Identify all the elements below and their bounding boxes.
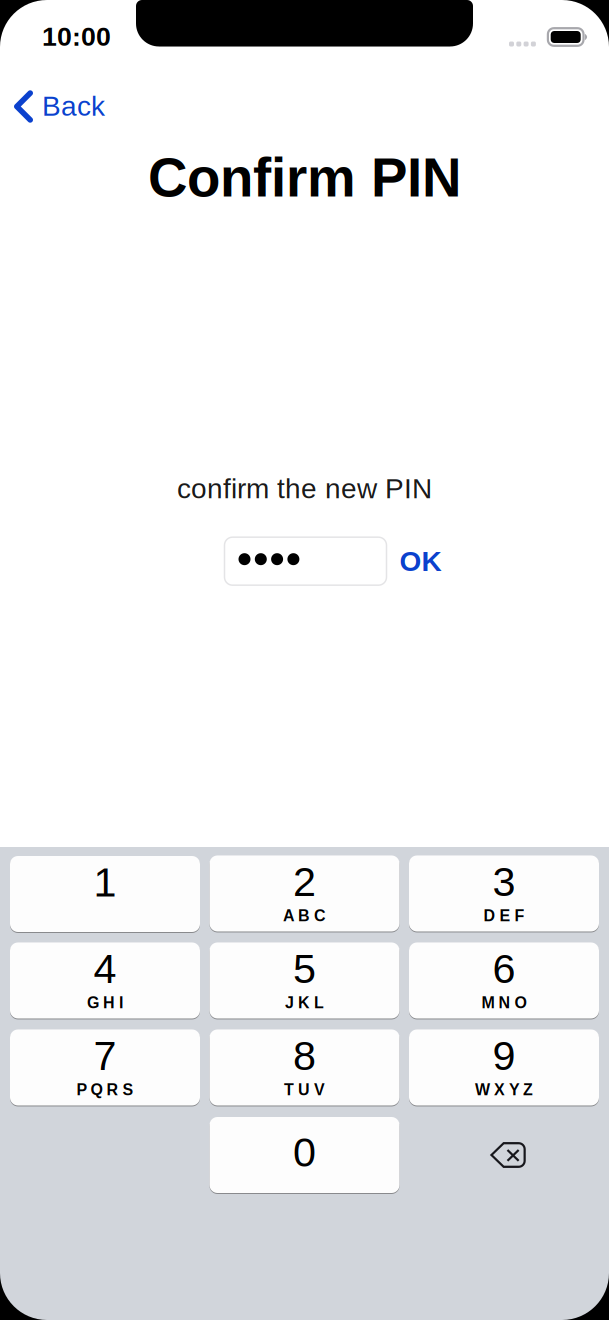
staticText: J K L xyxy=(285,994,324,1012)
staticText: Confirm PIN xyxy=(148,147,461,208)
staticText: 8 xyxy=(293,1032,316,1079)
button[interactable]: 1 xyxy=(10,856,200,932)
button[interactable]: 2 xyxy=(209,856,399,932)
staticText: 5 xyxy=(293,945,316,992)
staticText: 7 xyxy=(93,1032,116,1079)
staticText: 10:00 xyxy=(42,22,111,51)
button[interactable]: OK xyxy=(386,537,454,585)
staticText: OK xyxy=(399,545,441,577)
button[interactable]: 8 xyxy=(209,1030,399,1106)
button[interactable]: Delete xyxy=(409,1117,599,1193)
staticText: confirm the new PIN xyxy=(177,473,432,504)
staticText: G H I xyxy=(87,994,123,1012)
button[interactable]: 0 xyxy=(209,1117,399,1193)
staticText: 1 xyxy=(93,859,116,905)
staticText: Back xyxy=(42,90,105,122)
staticText: A B C xyxy=(283,907,326,925)
button[interactable]: 4 xyxy=(10,943,200,1019)
staticText: T U V xyxy=(284,1081,325,1099)
staticText: 2 xyxy=(293,858,316,905)
staticText: W X Y Z xyxy=(475,1081,533,1099)
staticText: M N O xyxy=(481,994,526,1012)
button[interactable]: 7 xyxy=(10,1030,200,1106)
button[interactable]: Back xyxy=(0,73,121,129)
button[interactable]: 6 xyxy=(409,943,599,1019)
staticText: 6 xyxy=(492,945,515,992)
staticText: 9 xyxy=(492,1032,515,1079)
staticText: 3 xyxy=(492,858,515,905)
staticText: D E F xyxy=(483,907,524,925)
button[interactable]: 5 xyxy=(209,943,399,1019)
staticText: P Q R S xyxy=(76,1081,133,1099)
staticText: 0 xyxy=(293,1129,316,1175)
button[interactable]: 9 xyxy=(409,1030,599,1106)
button[interactable]: 3 xyxy=(409,856,599,932)
staticText: 4 xyxy=(93,945,116,992)
